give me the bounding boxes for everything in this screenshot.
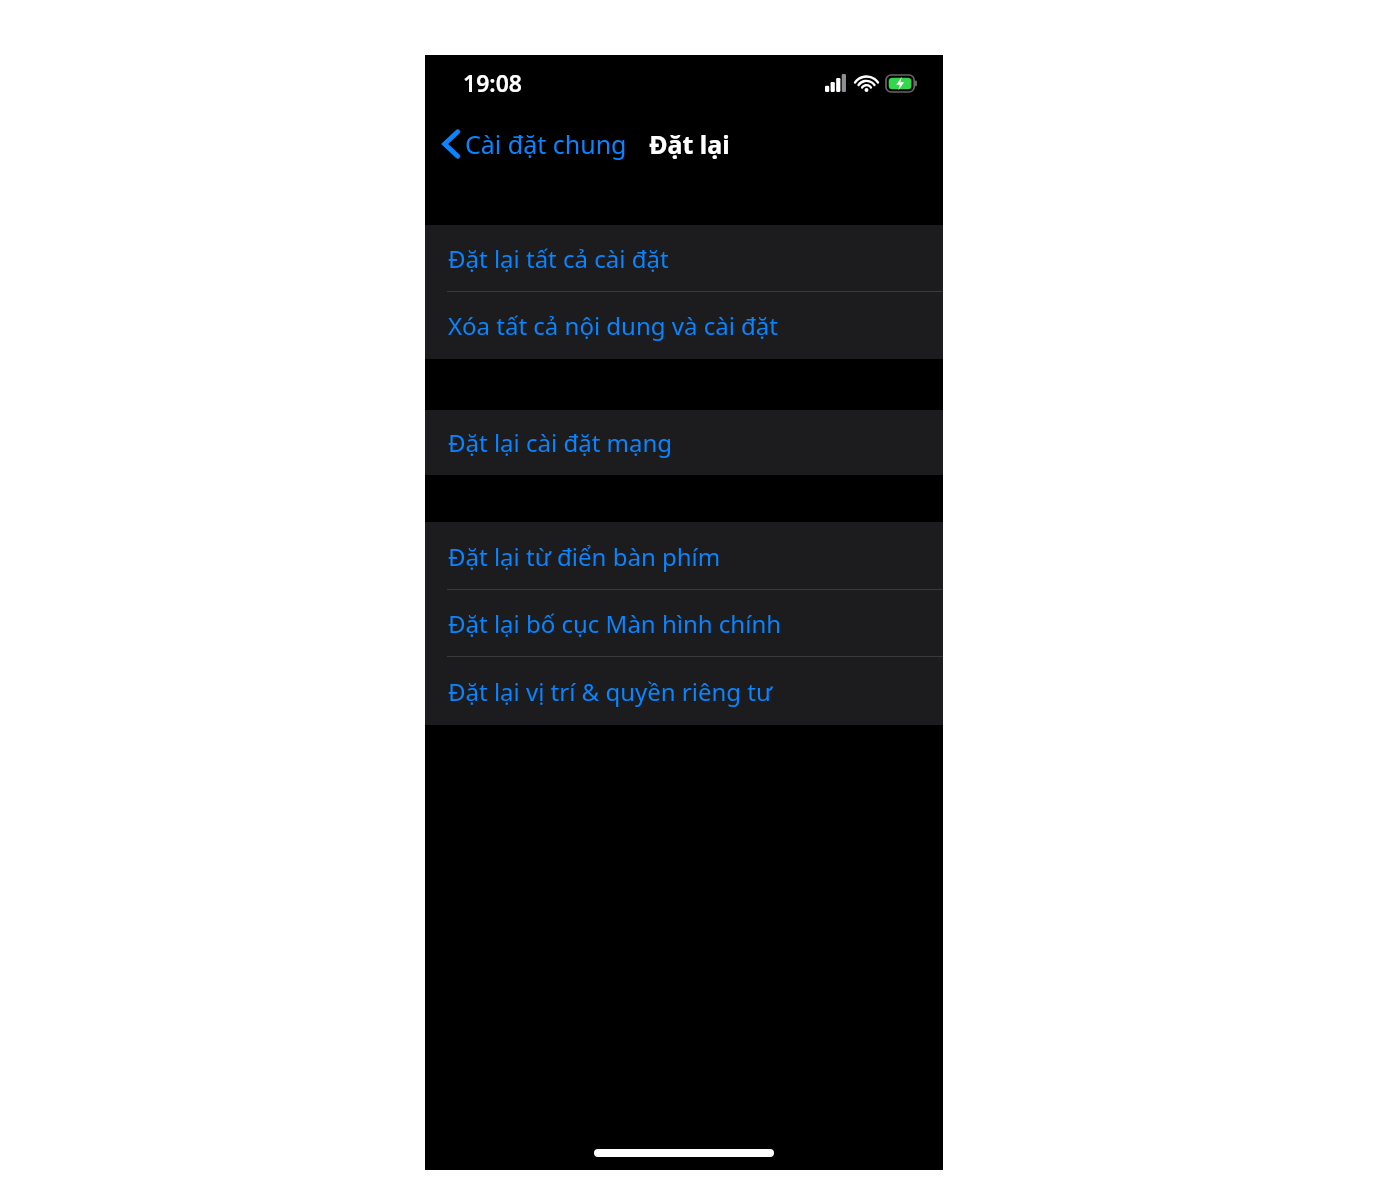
staticText: Xóa tất cả nội dung và cài đặt xyxy=(448,309,778,342)
button[interactable]: Đặt lại tất cả cài đặt xyxy=(425,225,943,292)
button[interactable]: Đặt lại vị trí & quyền riêng tư xyxy=(425,657,943,725)
staticText: Đặt lại cài đặt mạng xyxy=(448,426,673,459)
staticText: Đặt lại từ điển bàn phím xyxy=(448,540,721,573)
staticText: Đặt lại bố cục Màn hình chính xyxy=(448,607,782,640)
button[interactable]: Xóa tất cả nội dung và cài đặt xyxy=(425,292,943,359)
button[interactable]: Đặt lại bố cục Màn hình chính xyxy=(425,590,943,657)
button[interactable]: Đặt lại cài đặt mạng xyxy=(425,410,943,475)
staticText: Đặt lại vị trí & quyền riêng tư xyxy=(448,675,773,708)
button[interactable]: Back xyxy=(439,121,631,167)
staticText: Đặt lại xyxy=(649,127,730,161)
staticText: Cài đặt chung xyxy=(465,127,627,161)
staticText: Đặt lại tất cả cài đặt xyxy=(448,242,669,275)
other: Back xyxy=(443,130,459,158)
staticText: 19:08 xyxy=(463,67,522,98)
button[interactable]: Đặt lại từ điển bàn phím xyxy=(425,522,943,590)
